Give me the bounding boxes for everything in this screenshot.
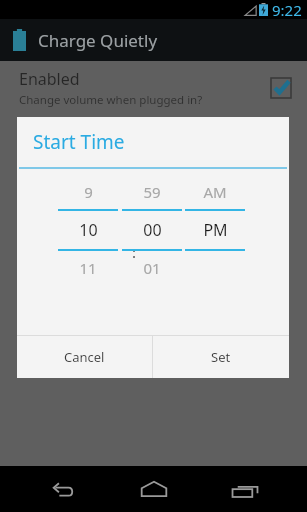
button[interactable]: Enabled: [0, 61, 307, 115]
staticText: PM: [203, 219, 228, 241]
staticText: 9:22: [272, 0, 302, 19]
button[interactable]: 9: [58, 169, 118, 335]
button[interactable]: AM: [185, 169, 245, 335]
staticText: Set: [211, 348, 231, 366]
staticText: 9: [84, 182, 93, 202]
button[interactable]: Back: [33, 469, 91, 509]
staticText: Start Time: [33, 129, 125, 155]
staticText: 01: [143, 258, 161, 278]
staticText: 10: [79, 219, 98, 241]
staticText: :: [132, 242, 137, 262]
staticText: 00: [143, 219, 162, 241]
staticText: Cancel: [64, 348, 105, 366]
staticText: 11: [79, 258, 97, 278]
staticText: Change volume when plugged in?: [19, 92, 203, 108]
button[interactable]: 59: [122, 169, 182, 335]
staticText: Enabled: [19, 68, 80, 90]
staticText: 59: [143, 182, 161, 202]
button[interactable]: Recent apps: [216, 469, 274, 509]
button[interactable]: Set: [153, 336, 289, 378]
staticText: AM: [203, 182, 227, 202]
button[interactable]: Home: [125, 469, 183, 509]
staticText: Charge Quietly: [38, 29, 158, 52]
button[interactable]: Enabled checkbox: [271, 78, 291, 98]
button[interactable]: Cancel: [17, 336, 152, 378]
